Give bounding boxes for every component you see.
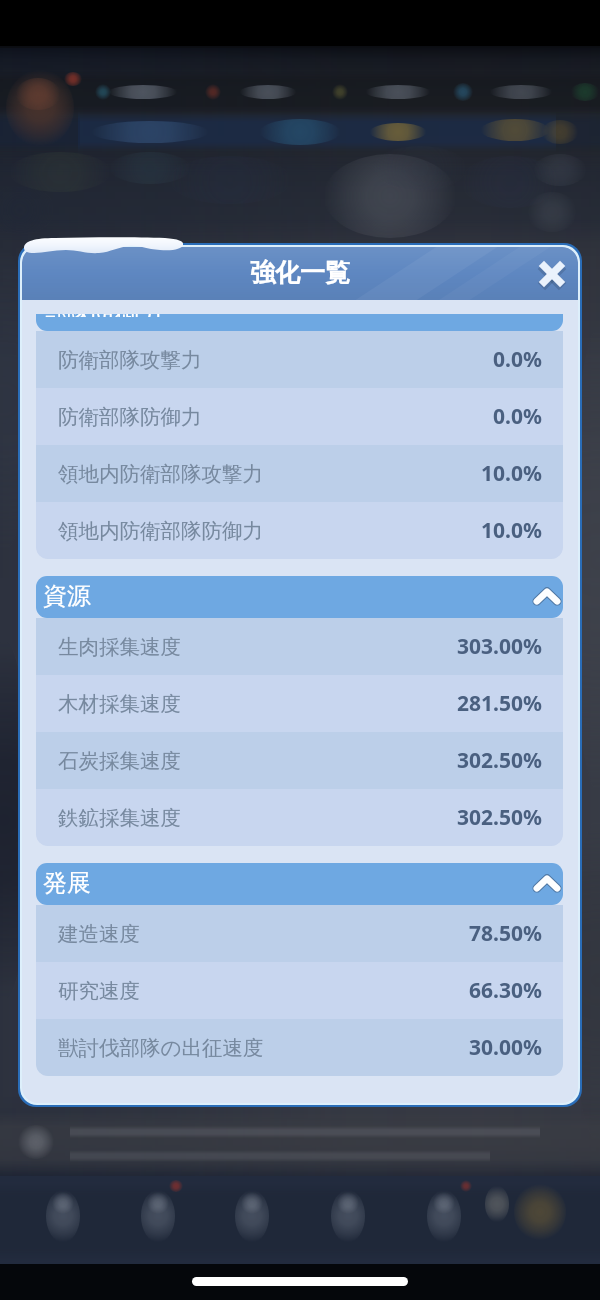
- staticText: 資源: [43, 581, 91, 611]
- staticText: 木材採集速度: [58, 691, 181, 717]
- button[interactable]: Close: [529, 251, 575, 297]
- staticText: 10.0%: [481, 459, 542, 488]
- button[interactable]: 木材採集速度: [36, 675, 563, 732]
- staticText: 獣討伐部隊の出征速度: [58, 1035, 264, 1061]
- button[interactable]: 防衛部隊攻撃力: [36, 331, 563, 388]
- staticText: 78.50%: [469, 919, 542, 948]
- staticText: 30.00%: [469, 1033, 542, 1062]
- staticText: 領地内防衛部隊攻撃力: [58, 461, 263, 487]
- staticText: 0.0%: [493, 345, 542, 374]
- staticText: 研究速度: [58, 978, 140, 1004]
- button[interactable]: 鉄鉱採集速度: [36, 789, 563, 846]
- staticText: 石炭採集速度: [58, 748, 181, 774]
- staticText: 10.0%: [481, 516, 542, 545]
- button[interactable]: 生肉採集速度: [36, 618, 563, 675]
- staticText: 防衛部隊攻撃力: [58, 347, 202, 373]
- staticText: 0.0%: [493, 402, 542, 431]
- button[interactable]: 資源: [36, 576, 563, 618]
- button[interactable]: 研究速度: [36, 962, 563, 1019]
- staticText: 強化一覧: [250, 257, 350, 288]
- staticText: 建造速度: [58, 921, 140, 947]
- button[interactable]: 領地内防衛部隊攻撃力: [36, 445, 563, 502]
- button[interactable]: 防衛部隊防御力: [36, 388, 563, 445]
- button[interactable]: 建造速度: [36, 905, 563, 962]
- staticText: 303.00%: [457, 632, 542, 661]
- button[interactable]: 部隊防御力: [36, 314, 563, 331]
- staticText: 生肉採集速度: [58, 634, 181, 660]
- staticText: 発展: [43, 868, 91, 898]
- button[interactable]: 発展: [36, 863, 563, 905]
- staticText: 281.50%: [457, 689, 542, 718]
- staticText: 鉄鉱採集速度: [58, 805, 181, 831]
- button[interactable]: 石炭採集速度: [36, 732, 563, 789]
- staticText: 302.50%: [457, 746, 542, 775]
- button[interactable]: 領地内防衛部隊防御力: [36, 502, 563, 559]
- staticText: 防衛部隊防御力: [58, 404, 202, 430]
- staticText: 領地内防衛部隊防御力: [58, 518, 263, 544]
- staticText: 部隊防御力: [43, 314, 163, 317]
- staticText: 302.50%: [457, 803, 542, 832]
- button[interactable]: 獣討伐部隊の出征速度: [36, 1019, 563, 1076]
- staticText: 66.30%: [469, 976, 542, 1005]
